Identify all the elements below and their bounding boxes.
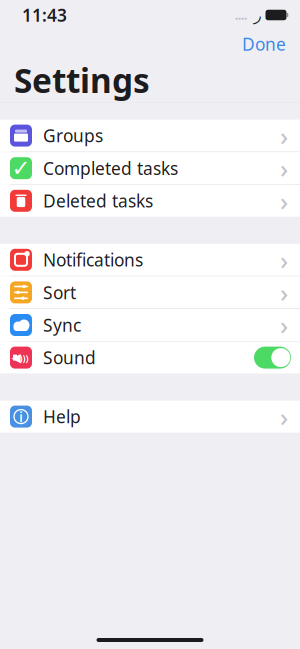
staticText: ✓ (11, 155, 30, 181)
staticText: Sort (43, 281, 76, 304)
staticText: Completed tasks (43, 157, 178, 180)
staticText: ◀ (11, 351, 20, 364)
button[interactable]: i (0, 401, 300, 433)
staticText: Settings (14, 58, 150, 102)
button[interactable]: Deleted tasks (0, 185, 300, 217)
button[interactable]: ✓ (0, 152, 300, 184)
staticText: › (280, 276, 288, 309)
button[interactable]: Done (228, 26, 300, 61)
staticText: › (280, 308, 288, 342)
staticText: 11:43 (22, 3, 67, 26)
staticText: Sync (43, 313, 81, 336)
staticText: i (19, 407, 23, 426)
button[interactable]: Sync (0, 309, 300, 341)
button[interactable]: ◀ (0, 342, 300, 374)
staticText: ))) (19, 351, 28, 364)
staticText: Sound (43, 346, 96, 369)
button[interactable]: Sort (0, 276, 300, 308)
button[interactable]: Notifications (0, 244, 300, 276)
staticText: › (280, 119, 288, 152)
staticText: › (280, 400, 288, 433)
staticText: Help (43, 405, 81, 428)
staticText: › (280, 184, 288, 218)
staticText: ◞ (253, 4, 261, 26)
staticText: Notifications (43, 248, 143, 271)
button[interactable]: Groups (0, 120, 300, 152)
staticText: Done (242, 32, 286, 55)
staticText: › (280, 243, 288, 277)
staticText: .... (235, 7, 247, 23)
staticText: Deleted tasks (43, 189, 153, 212)
staticText: Groups (43, 124, 103, 147)
staticText: › (280, 151, 288, 185)
